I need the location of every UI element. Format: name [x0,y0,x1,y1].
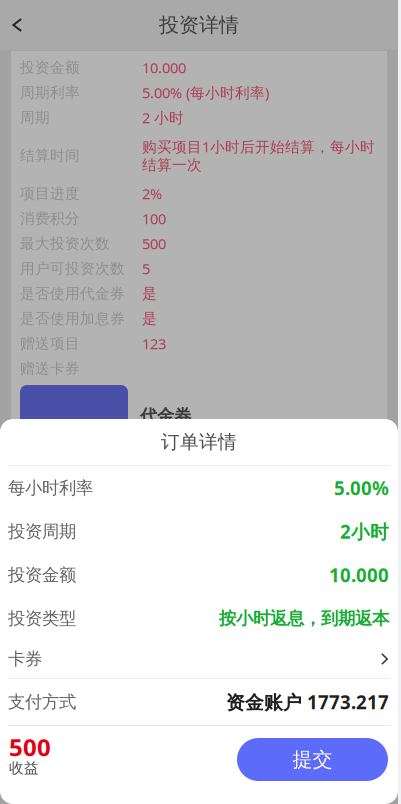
staticText: 赠送卡券 [20,359,80,377]
staticText: 订单详情 [161,430,237,453]
staticText: 消费积分 [20,209,80,227]
staticText: 投资类型 [8,608,76,629]
staticText: 500 [9,731,51,763]
staticText: 卡券 [8,648,42,670]
staticText: 投资金额 [20,58,80,76]
staticText: 周期 [20,108,50,126]
staticText: 代金券 [140,405,191,427]
staticText: 500 [142,234,166,253]
staticText: 2% [142,184,162,203]
staticText: 10.000 [142,58,186,77]
staticText: 收益 [9,759,39,777]
staticText: 赠送项目 [20,334,80,352]
staticText: 5.00% [334,476,389,500]
staticText: 123 [142,334,166,353]
button[interactable]: 卡券 [0,640,398,678]
staticText: 每小时利率 [8,477,93,499]
staticText: 2小时 [340,519,389,544]
staticText: 资金账户 1773.217 [226,690,389,714]
staticText: 是 [142,284,157,302]
staticText: 支付方式 [8,691,76,713]
staticText: 最大投资次数 [20,234,110,252]
staticText: 5 [142,259,150,278]
staticText: 按小时返息，到期返本 [219,608,389,629]
staticText: 投资详情 [159,13,239,37]
staticText: 是 [142,309,157,327]
staticText: 用户可投资次数 [20,259,125,277]
button[interactable]: 提交 [237,734,388,781]
staticText: 2 小时 [142,108,184,127]
staticText: 提交 [292,747,332,772]
staticText: 投资周期 [8,521,76,542]
staticText: 投资金额 [8,564,76,586]
staticText: 项目进度 [20,184,80,202]
staticText: 100 [142,209,166,228]
staticText: 周期利率 [20,83,80,101]
button[interactable]: 返回 [0,2,37,48]
staticText: 是否使用代金券 [20,284,125,302]
staticText: 是否使用加息券 [20,309,125,327]
staticText: 购买项目1小时后开始结算，每小时结算一次 [142,137,375,174]
staticText: 10.000 [329,563,389,587]
staticText: 结算时间 [20,146,80,164]
staticText: 5.00% (每小时利率) [142,83,269,102]
